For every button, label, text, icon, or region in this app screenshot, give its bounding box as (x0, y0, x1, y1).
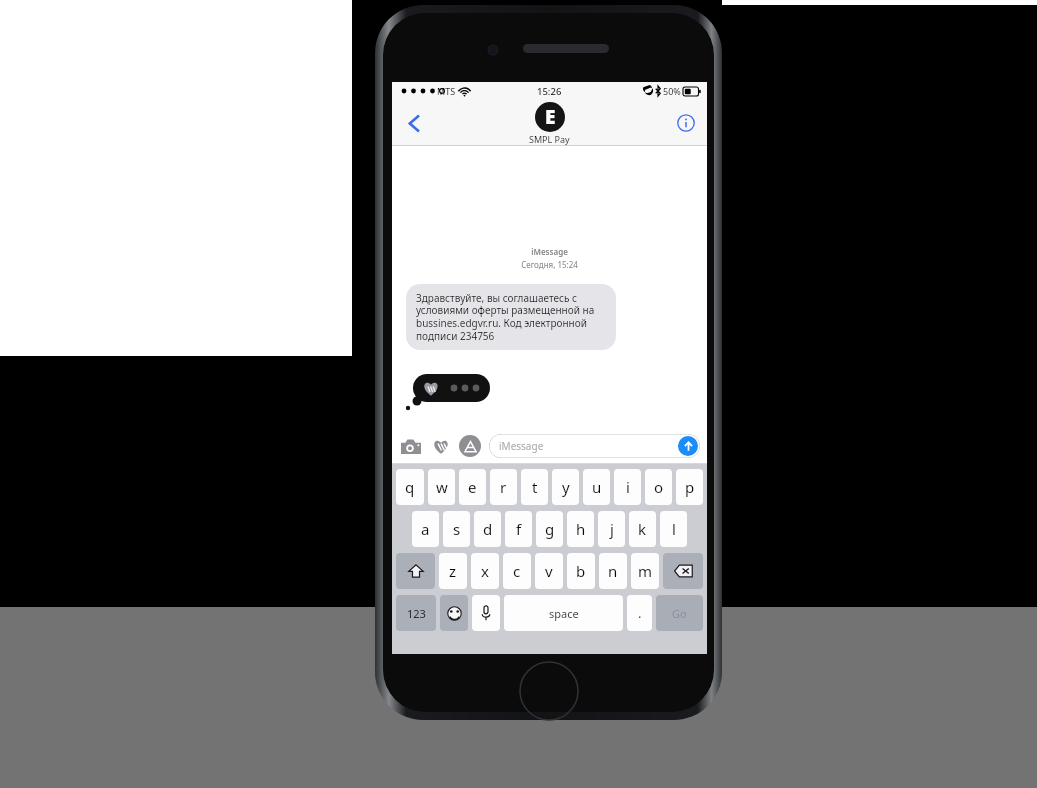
staticText: y (562, 477, 570, 497)
staticText: v (545, 561, 553, 581)
button[interactable]: E (529, 102, 570, 145)
button[interactable]: c (503, 553, 531, 589)
button[interactable]: y (552, 469, 579, 505)
staticText: z (449, 561, 457, 581)
staticText: d (483, 519, 493, 539)
button[interactable]: 123 (396, 595, 436, 631)
staticText: e (468, 477, 477, 497)
staticText: c (513, 561, 521, 581)
button[interactable]: Dictation (472, 595, 500, 631)
button[interactable]: space (504, 595, 623, 631)
staticText: 15:26 (537, 85, 562, 98)
button[interactable]: g (536, 511, 563, 547)
staticText: l (672, 519, 676, 539)
staticText: u (592, 477, 602, 497)
button[interactable]: u (583, 469, 610, 505)
staticText: i (626, 477, 630, 497)
staticText: iMessage (392, 246, 707, 257)
button[interactable]: Go (656, 595, 703, 631)
staticText: E (545, 104, 556, 130)
button[interactable]: . (627, 595, 652, 631)
staticText: x (481, 561, 489, 581)
button[interactable]: z (439, 553, 467, 589)
button[interactable]: k (629, 511, 656, 547)
button[interactable]: n (599, 553, 627, 589)
button[interactable]: Здравствуйте, вы соглашаетесь с условиям… (406, 284, 616, 350)
staticText: m (638, 561, 653, 581)
staticText: b (576, 561, 586, 581)
button[interactable]: Digital Touch (430, 435, 452, 457)
staticText: r (500, 477, 507, 497)
staticText: 50% (663, 85, 681, 97)
button[interactable]: Info (671, 108, 701, 138)
staticText: k (638, 519, 647, 539)
staticText: j (610, 519, 614, 539)
button[interactable]: h (567, 511, 594, 547)
staticText: iMessage (499, 439, 544, 453)
button[interactable]: Camera (399, 434, 423, 458)
button[interactable]: q (396, 469, 424, 505)
staticText: o (654, 477, 664, 497)
staticText: p (685, 477, 695, 497)
button[interactable]: s (443, 511, 470, 547)
staticText: . (638, 604, 642, 622)
staticText: space (549, 606, 579, 621)
button[interactable]: a (412, 511, 439, 547)
staticText: a (421, 519, 430, 539)
staticText: Сегодня, 15:24 (392, 259, 707, 270)
button[interactable]: App Store (459, 435, 481, 457)
button[interactable]: j (598, 511, 625, 547)
button[interactable]: Send (678, 436, 698, 456)
button[interactable]: w (428, 469, 455, 505)
button[interactable]: m (631, 553, 659, 589)
button[interactable]: Shift (396, 553, 435, 589)
staticText: n (608, 561, 618, 581)
staticText: Здравствуйте, вы соглашаетесь с условиям… (416, 291, 606, 343)
button[interactable]: i (614, 469, 641, 505)
staticText: SMPL Pay (529, 133, 570, 145)
button[interactable]: Emoji (440, 595, 468, 631)
staticText: w (436, 477, 448, 497)
staticText: 123 (407, 606, 426, 621)
staticText: Go (672, 606, 687, 621)
button[interactable]: p (676, 469, 703, 505)
button[interactable]: r (490, 469, 517, 505)
staticText: h (576, 519, 586, 539)
staticText: g (545, 519, 555, 539)
staticText: s (453, 519, 461, 539)
staticText: MTS (437, 85, 456, 97)
staticText: f (516, 519, 522, 539)
button[interactable]: o (645, 469, 672, 505)
button[interactable]: v (535, 553, 563, 589)
staticText: t (532, 477, 538, 497)
staticText: q (405, 477, 415, 497)
button[interactable]: Backspace (663, 553, 703, 589)
button[interactable]: b (567, 553, 595, 589)
button[interactable]: l (660, 511, 687, 547)
button[interactable]: x (471, 553, 499, 589)
button[interactable]: d (474, 511, 501, 547)
button[interactable]: t (521, 469, 548, 505)
button[interactable]: Back (396, 106, 430, 140)
button[interactable]: f (505, 511, 532, 547)
button[interactable]: e (459, 469, 486, 505)
button[interactable]: iMessage (489, 434, 700, 458)
